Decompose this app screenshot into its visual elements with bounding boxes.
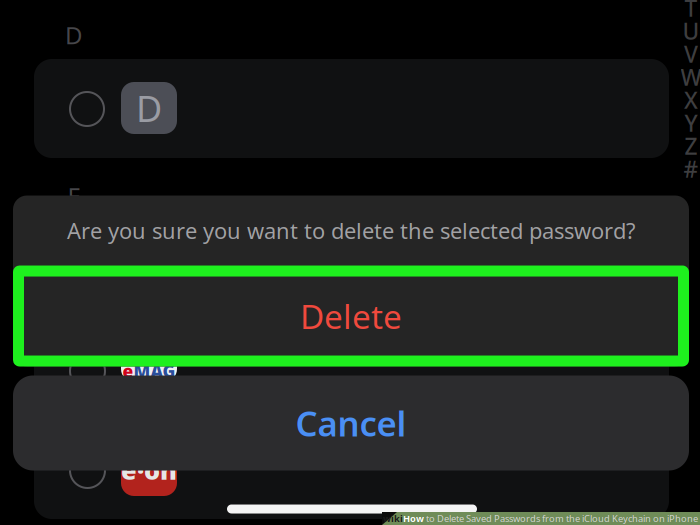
staticText: V (684, 39, 698, 69)
staticText: Z (684, 131, 697, 161)
staticText: wiki (383, 512, 403, 525)
staticText: Y (684, 108, 697, 138)
staticText: How (403, 512, 424, 525)
staticText: # (683, 154, 698, 184)
staticText: Are you sure you want to delete the sele… (67, 216, 635, 245)
staticText: e (122, 359, 133, 382)
staticText: D (136, 84, 162, 132)
staticText: X (684, 85, 698, 115)
staticText: W (680, 62, 700, 92)
staticText: to Delete Saved Passwords from the iClou… (424, 512, 700, 525)
button[interactable]: Delete (13, 265, 689, 366)
staticText: Delete (300, 294, 402, 338)
button[interactable]: Cancel (13, 375, 689, 470)
staticText: D (65, 19, 83, 51)
staticText: Cancel (295, 400, 406, 446)
staticText: T (684, 0, 697, 23)
staticText: MAG (133, 359, 175, 382)
staticText: E (67, 180, 80, 212)
staticText: U (682, 16, 699, 46)
staticText: e·on (121, 453, 177, 487)
